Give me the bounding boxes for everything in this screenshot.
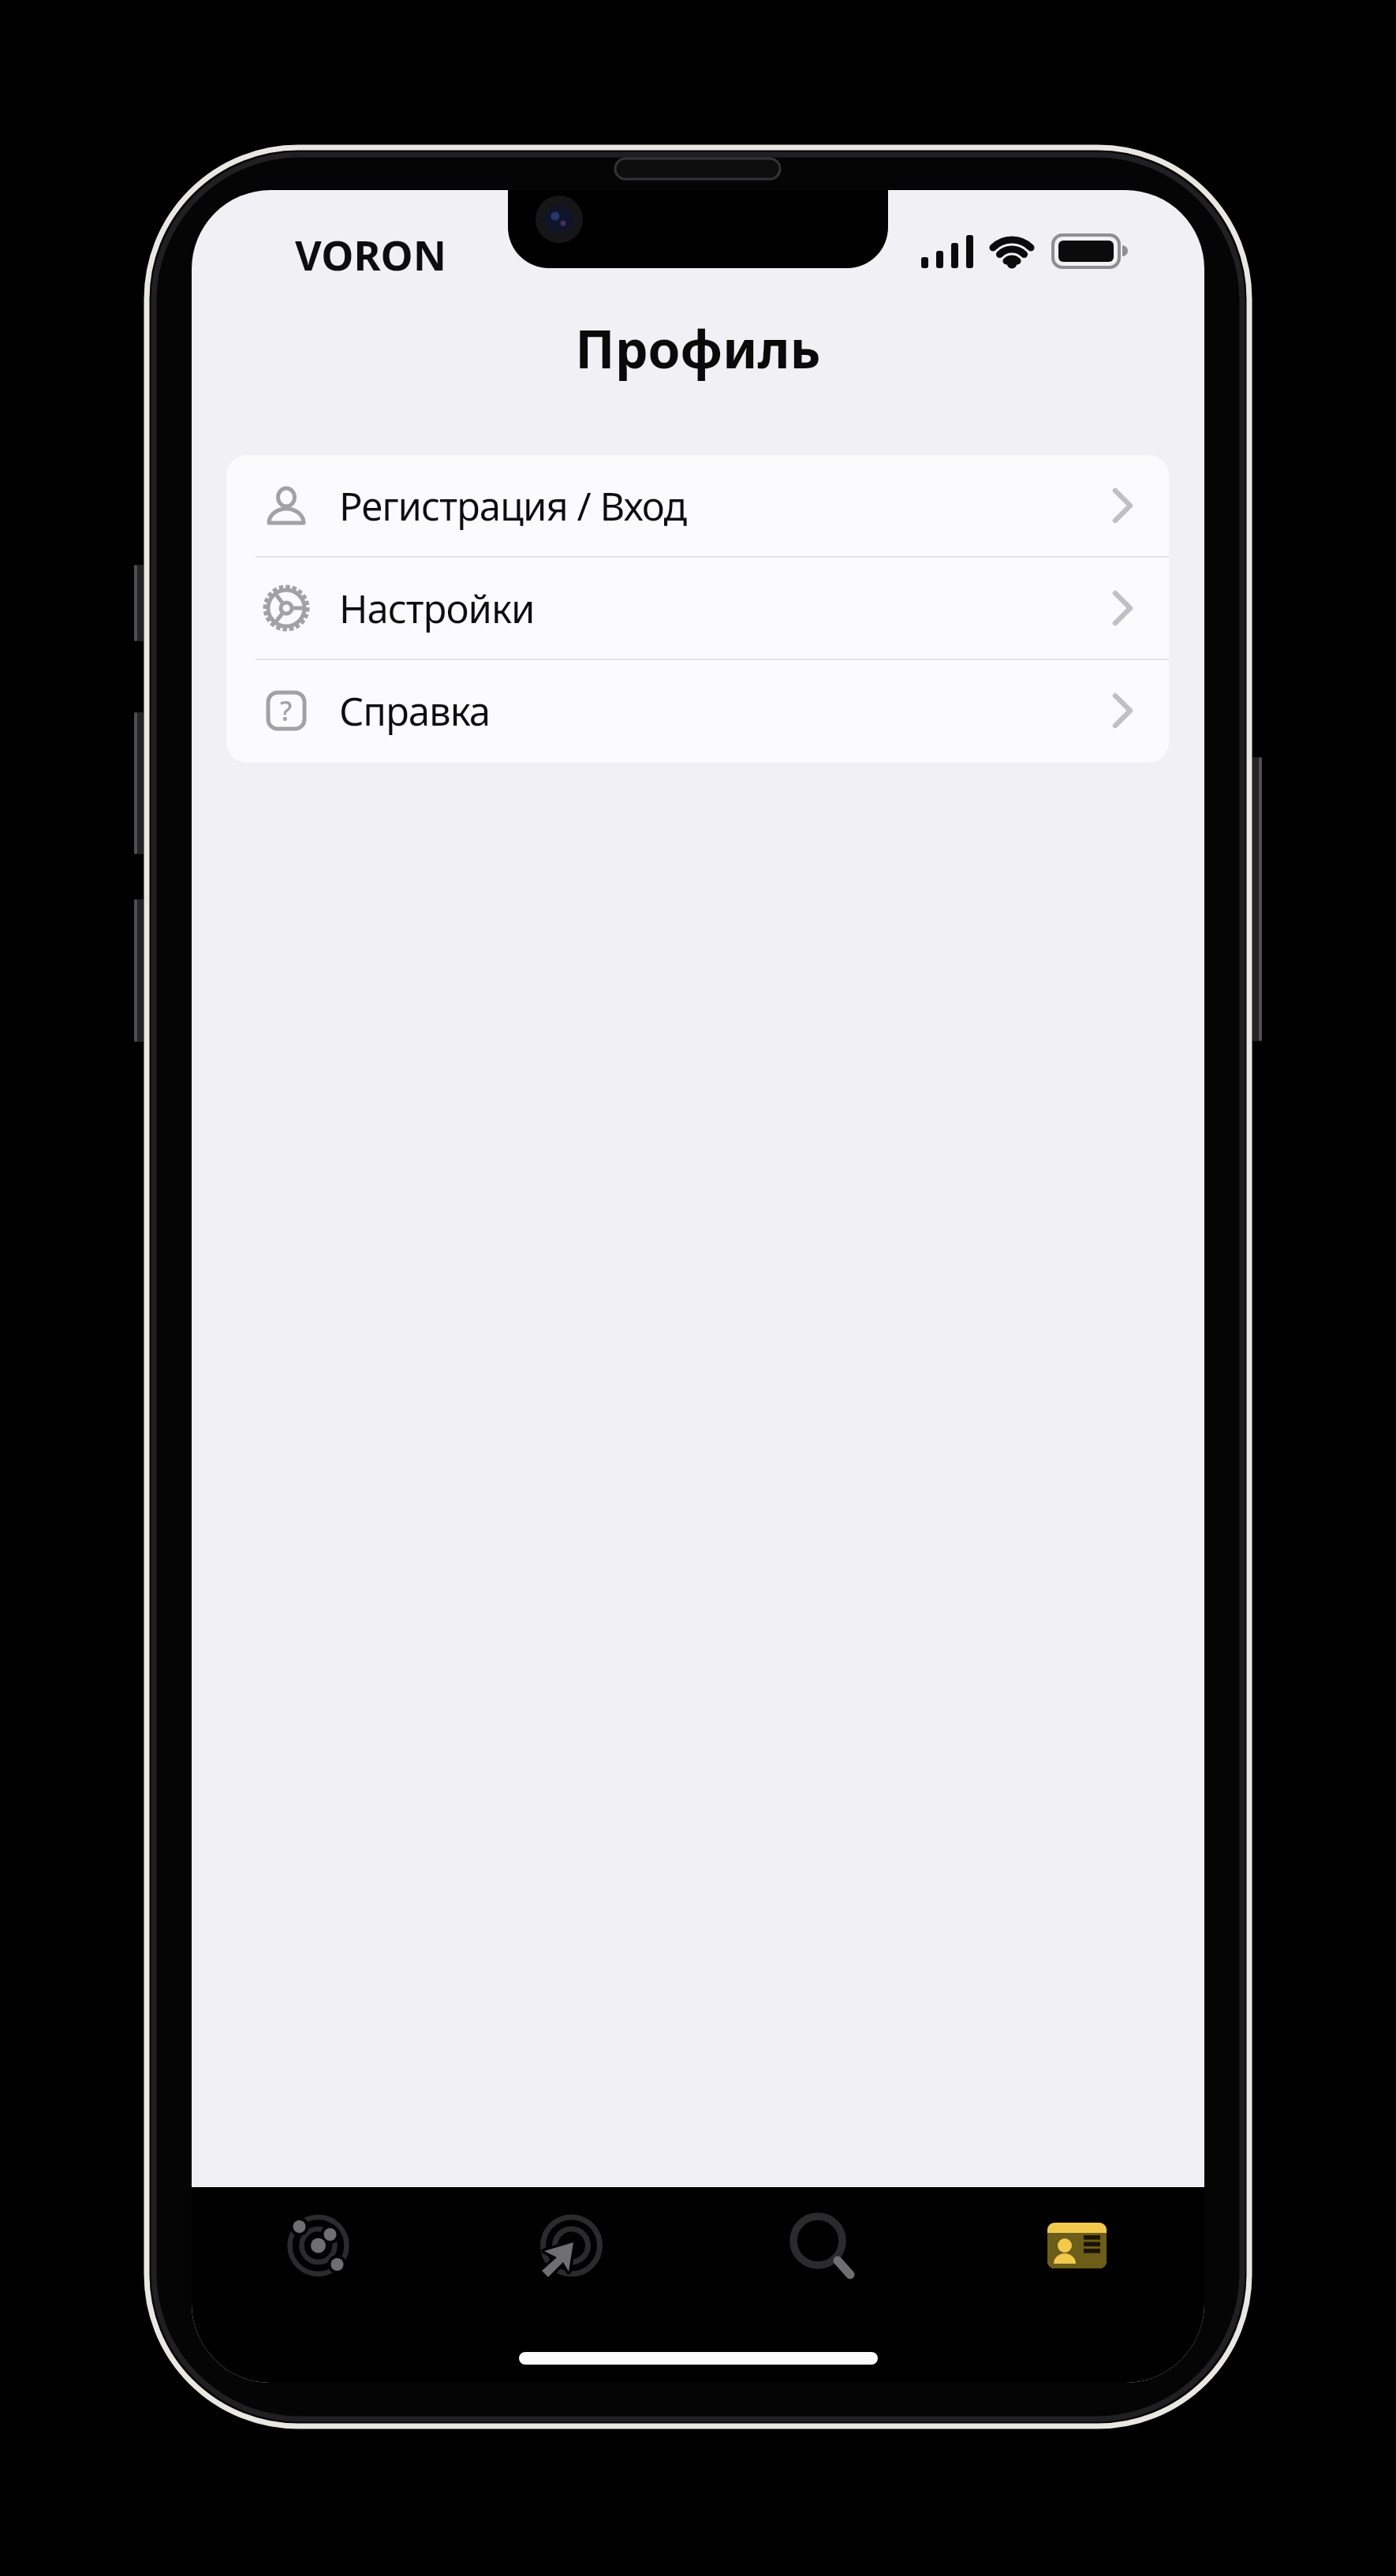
button[interactable]: ? <box>226 660 1169 761</box>
button[interactable] <box>951 2187 1204 2383</box>
staticText: Настройки <box>339 582 535 635</box>
button[interactable]: Регистрация / Вход <box>226 455 1169 556</box>
staticText: Профиль <box>192 312 1204 383</box>
button[interactable] <box>445 2187 698 2383</box>
button[interactable]: Настройки <box>226 558 1169 659</box>
staticText: Справка <box>339 685 491 737</box>
button[interactable] <box>698 2187 951 2383</box>
staticText: Регистрация / Вход <box>339 480 687 532</box>
button[interactable] <box>192 2187 445 2383</box>
staticText: ? <box>280 693 293 729</box>
staticText: VORON <box>295 226 446 282</box>
